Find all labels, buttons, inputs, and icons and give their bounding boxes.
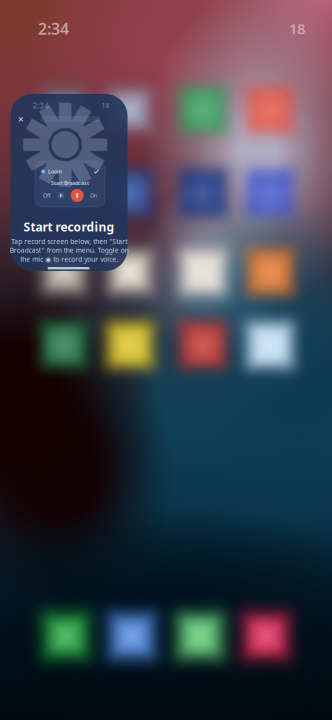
staticText: ✕	[17, 115, 24, 124]
staticText: 2:34	[32, 100, 49, 111]
staticText: On	[90, 192, 97, 199]
staticText: Start Broadcast	[51, 179, 89, 187]
button[interactable]: Close	[14, 113, 27, 126]
staticText: Tap record screen below, then "Start Bro…	[9, 237, 128, 263]
staticText: Start recording	[23, 219, 114, 235]
staticText: 2:34	[38, 18, 69, 39]
staticText: 18	[101, 101, 109, 110]
staticText: Off	[43, 192, 51, 199]
staticText: Loom	[48, 168, 62, 175]
staticText: 18	[289, 19, 305, 38]
